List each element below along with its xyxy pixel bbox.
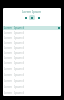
staticText: Ipsum d [14,56,25,60]
staticText: Lorem [4,91,14,95]
staticText: Lorem [4,31,14,35]
staticText: Ipsum d [14,61,25,65]
button[interactable]: Lorem [3,78,61,84]
button[interactable]: Lorem [3,90,61,96]
staticText: Ipsum d [14,91,25,95]
staticText: Lorem [4,26,14,30]
staticText: Ipsum d [14,26,58,30]
staticText: Lorem [4,67,14,71]
button[interactable]: Lorem [3,40,61,45]
staticText: Lorem [4,46,14,50]
staticText: Lorem [4,41,14,45]
staticText: Ipsum d [14,41,25,45]
staticText: Ipsum d [14,51,25,55]
button[interactable]: Lorem [3,35,61,40]
button[interactable]: Lorem [3,55,61,60]
button[interactable]: Lorem [3,72,61,78]
staticText: Ipsum d [14,79,25,83]
staticText: Ipsum d [14,67,25,71]
staticText: Lorem [4,56,14,60]
staticText: Lorem Ipsum [22,10,42,14]
staticText: Lorem [4,73,14,77]
button[interactable]: Previous [22,15,29,20]
button[interactable]: Lorem [3,50,61,55]
staticText: Ipsum d [14,73,25,77]
button[interactable]: Lorem [3,45,61,50]
button[interactable]: Play [29,15,35,20]
staticText: Lorem [4,36,14,40]
button[interactable]: Lorem [3,60,61,66]
staticText: Lorem [4,51,14,55]
staticText: Lorem [4,79,14,83]
button[interactable]: Lorem [3,84,61,90]
staticText: Lorem [4,61,14,65]
staticText: Ipsum d [14,46,25,50]
staticText: Ipsum d [14,85,25,89]
staticText: Ipsum d [14,31,25,35]
button[interactable]: Lorem [3,66,61,72]
staticText: Lorem [4,85,14,89]
button[interactable]: Lorem [3,30,61,35]
button[interactable]: Next [35,15,42,20]
staticText: Ipsum d [14,36,25,40]
